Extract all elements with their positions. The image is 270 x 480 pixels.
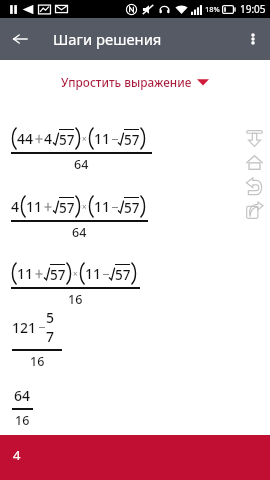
staticText: 19:05 (240, 2, 266, 16)
staticText: 57 (50, 266, 66, 284)
staticText: 16 (68, 291, 83, 308)
button[interactable]: Undo (242, 174, 267, 198)
staticText: 11 (26, 197, 43, 216)
staticText: 64 (74, 156, 89, 173)
staticText: × (82, 133, 87, 144)
staticText: 4 (13, 446, 21, 464)
staticText: 57 (46, 308, 62, 346)
button[interactable]: More options (236, 18, 270, 60)
staticText: Упростить выражение (61, 74, 192, 90)
staticText: 64 (72, 224, 87, 241)
staticText: 57 (59, 131, 75, 149)
staticText: × (82, 201, 87, 212)
staticText: 11 (85, 264, 102, 283)
staticText: 4 (11, 197, 20, 216)
button[interactable]: Home (242, 150, 267, 174)
staticText: 44 (17, 129, 34, 148)
button[interactable]: Back (0, 18, 40, 60)
staticText: 11 (94, 129, 111, 148)
staticText: 16 (30, 353, 45, 370)
staticText: 57 (124, 131, 140, 149)
staticText: 11 (17, 264, 34, 283)
staticText: 121 (12, 318, 37, 337)
button[interactable]: Упростить выражение (0, 60, 270, 104)
staticText: × (73, 268, 78, 279)
staticText: 64 (14, 386, 31, 405)
staticText: 4 (44, 129, 53, 148)
staticText: Шаги решения (53, 29, 162, 49)
staticText: 11 (94, 197, 111, 216)
staticText: 57 (115, 266, 131, 284)
staticText: 57 (124, 199, 140, 217)
button[interactable]: Download (242, 126, 267, 150)
button[interactable]: Share (242, 198, 267, 222)
staticText: 18% (205, 4, 220, 14)
staticText: 16 (15, 412, 30, 429)
staticText: 57 (59, 199, 75, 217)
